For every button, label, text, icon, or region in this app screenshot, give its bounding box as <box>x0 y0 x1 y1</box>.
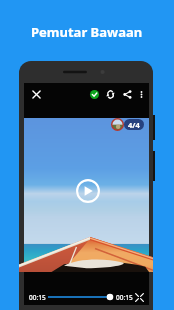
button[interactable]: Profile <box>111 118 124 131</box>
button[interactable]: Play <box>76 179 100 203</box>
button[interactable]: Share <box>119 86 135 102</box>
button[interactable]: 4/4 <box>124 119 144 130</box>
button[interactable]: Verified <box>86 86 102 102</box>
staticText: 4/4 <box>128 120 140 130</box>
staticText: 00:15 <box>29 293 46 302</box>
button[interactable]: Repeat <box>102 86 118 102</box>
staticText: 00:15 <box>116 293 133 302</box>
button[interactable]: Close <box>28 86 44 102</box>
button[interactable]: More options <box>133 86 149 102</box>
button[interactable]: Fullscreen <box>134 292 145 303</box>
staticText: Pemutar Bawaan <box>31 23 143 41</box>
